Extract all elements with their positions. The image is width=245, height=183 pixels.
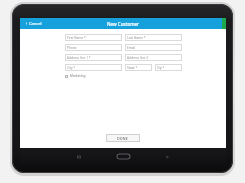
button[interactable]: State * <box>125 64 152 71</box>
staticText: Email <box>127 46 136 50</box>
staticText: New Customer <box>107 21 139 27</box>
button[interactable]: DONE <box>106 134 140 142</box>
staticText: City * <box>67 66 76 70</box>
staticText: First Name * <box>67 36 86 40</box>
button[interactable]: Address line 2 <box>125 54 182 61</box>
staticText: Phone <box>67 46 77 50</box>
button[interactable]: First Name * <box>65 34 122 41</box>
button[interactable]: City * <box>65 64 122 71</box>
button[interactable]: Phone <box>65 44 122 51</box>
button[interactable]: Marketing <box>65 73 86 79</box>
button[interactable]: Back <box>162 152 172 162</box>
button[interactable]: Email <box>125 44 182 51</box>
button[interactable]: Home <box>113 151 133 162</box>
button[interactable]: Address line 1 * <box>65 54 122 61</box>
button[interactable]: Last Name * <box>125 34 182 41</box>
button[interactable]: Cancel <box>24 20 43 27</box>
staticText: Cancel <box>29 21 42 26</box>
button[interactable]: Zip * <box>155 64 182 71</box>
staticText: Address line 1 * <box>67 56 91 60</box>
button[interactable]: Recents <box>74 152 84 162</box>
staticText: Zip * <box>157 66 165 70</box>
staticText: Marketing <box>70 74 86 78</box>
staticText: DONE <box>117 136 129 141</box>
staticText: State * <box>127 66 138 70</box>
staticText: Last Name * <box>127 36 146 40</box>
staticText: Address line 2 <box>127 56 148 60</box>
